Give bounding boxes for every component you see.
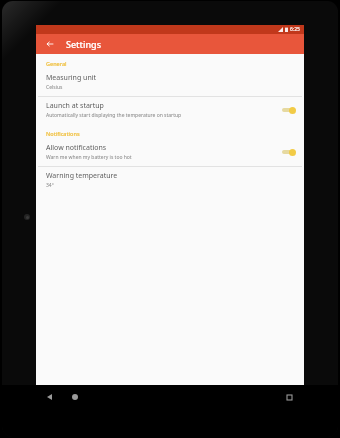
staticText: Allow notifications: [46, 143, 107, 153]
button[interactable]: Home: [68, 390, 82, 404]
button[interactable]: Recent apps: [282, 390, 296, 404]
button[interactable]: Back: [42, 390, 56, 404]
staticText: Warn me when my battery is too hot: [46, 154, 132, 161]
button[interactable]: Measuring unit: [36, 69, 304, 96]
button[interactable]: Allow notifications: [36, 139, 304, 166]
staticText: Notifications: [46, 130, 80, 137]
button[interactable]: Toggle: [280, 105, 296, 115]
staticText: 34°: [46, 182, 54, 189]
staticText: Measuring unit: [46, 73, 97, 83]
button[interactable]: Warning temperature: [36, 167, 304, 194]
staticText: Settings: [66, 38, 102, 50]
button[interactable]: Back: [42, 36, 58, 52]
staticText: Automatically start displaying the tempe…: [46, 112, 182, 119]
staticText: Warning temperature: [46, 171, 118, 181]
staticText: Celsius: [46, 84, 63, 91]
staticText: General: [46, 60, 67, 67]
button[interactable]: Launch at startup: [36, 97, 304, 124]
staticText: 6:25: [290, 26, 300, 33]
button[interactable]: Toggle: [280, 147, 296, 157]
staticText: Launch at startup: [46, 101, 104, 111]
